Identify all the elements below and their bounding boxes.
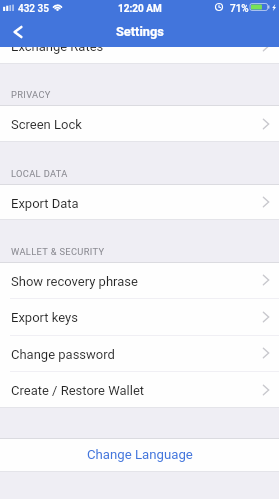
- staticText: PRIVACY: [11, 89, 51, 100]
- staticText: Settings: [116, 24, 164, 39]
- staticText: 12:20 AM: [118, 3, 162, 15]
- staticText: 432 35: [18, 3, 49, 15]
- staticText: Change Language: [87, 447, 193, 462]
- button[interactable]: Export keys: [0, 298, 279, 335]
- staticText: WALLET & SECURITY: [11, 246, 105, 257]
- button[interactable]: Back: [0, 18, 36, 47]
- staticText: Create / Restore Wallet: [11, 383, 145, 398]
- staticText: Export keys: [11, 310, 78, 325]
- staticText: LOCAL DATA: [11, 168, 68, 179]
- button[interactable]: Exchange Rates: [0, 27, 279, 64]
- staticText: Screen Lock: [11, 117, 82, 132]
- button[interactable]: Create / Restore Wallet: [0, 371, 279, 408]
- button[interactable]: Screen Lock: [0, 105, 279, 142]
- button[interactable]: Show recovery phrase: [0, 262, 279, 298]
- staticText: 71%: [230, 3, 249, 15]
- button[interactable]: Export Data: [0, 184, 279, 220]
- staticText: Change password: [11, 347, 115, 362]
- button[interactable]: Change Language: [0, 438, 279, 472]
- staticText: Exchange Rates: [11, 39, 104, 54]
- button[interactable]: Change password: [0, 335, 279, 371]
- staticText: Export Data: [11, 196, 79, 211]
- staticText: Show recovery phrase: [11, 274, 138, 289]
